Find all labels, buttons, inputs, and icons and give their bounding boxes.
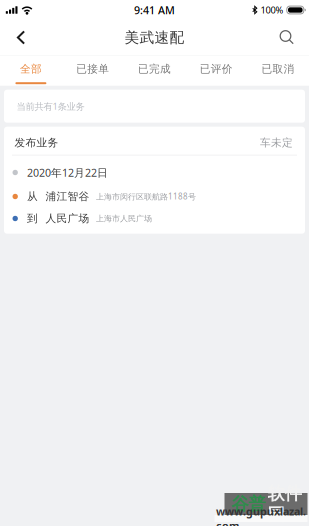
staticText: 已完成 [138, 62, 171, 75]
staticText: 2020年12月22日 [27, 165, 108, 180]
button[interactable]: Search [268, 20, 306, 54]
button[interactable]: 已接单 [62, 56, 124, 86]
staticText: 已取消 [262, 62, 295, 75]
staticText: 已接单 [76, 62, 109, 75]
button[interactable]: 发布业务 [4, 127, 305, 234]
staticText: 发布业务 [14, 136, 58, 149]
staticText: 车未定 [260, 136, 293, 149]
button[interactable]: Back [2, 20, 40, 54]
staticText: 100% [261, 4, 284, 16]
staticText: 上海市人民广场 [96, 214, 152, 223]
button[interactable]: 已评价 [185, 56, 247, 86]
staticText: 谷普 [231, 493, 265, 515]
button[interactable]: 已完成 [124, 56, 185, 86]
staticText: 浦江智谷 [45, 190, 89, 203]
staticText: www.gupuxlazal.com [216, 504, 306, 526]
staticText: 美武速配 [124, 28, 184, 46]
staticText: 9:41 AM [134, 3, 175, 17]
staticText: 已评价 [200, 62, 233, 75]
staticText: 从 [27, 190, 38, 203]
staticText: 上海市闵行区联航路1188号 [96, 191, 196, 202]
staticText: 软件园 [267, 483, 301, 525]
staticText: 当前共有1条业务 [16, 100, 84, 112]
staticText: 到 [27, 212, 38, 225]
button[interactable]: 已取消 [247, 56, 309, 86]
button[interactable]: 全部 [0, 56, 62, 86]
staticText: 人民广场 [45, 212, 89, 225]
staticText: 全部 [20, 62, 42, 75]
